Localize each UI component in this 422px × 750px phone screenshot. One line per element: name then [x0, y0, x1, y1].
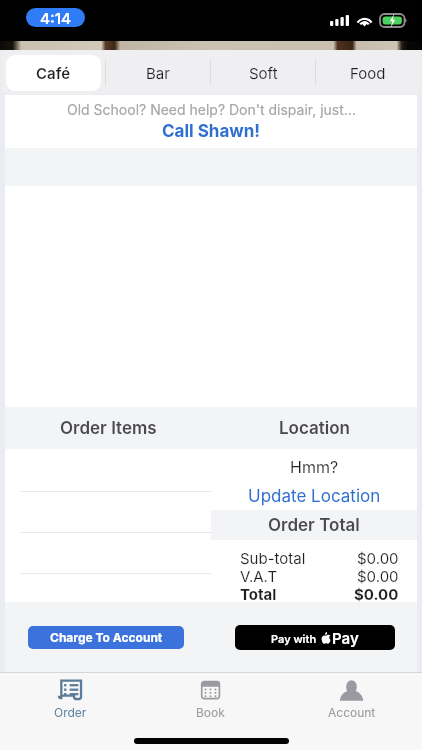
- staticText: Soft: [249, 64, 278, 82]
- staticText: Total: [240, 585, 277, 602]
- staticText: Order Items: [60, 418, 157, 439]
- button[interactable]: Account: [281, 675, 422, 723]
- button[interactable]: Bar: [110, 55, 206, 91]
- staticText: Update Location: [248, 486, 381, 507]
- button[interactable]: Pay with: [235, 625, 395, 650]
- staticText: V.A.T: [240, 567, 278, 585]
- staticText: Pay: [332, 629, 359, 647]
- staticText: Food: [350, 64, 386, 82]
- staticText: Hmm?: [290, 457, 339, 476]
- staticText: Old School? Need help? Don't dispair, ju…: [67, 101, 356, 118]
- staticText: Pay with: [271, 632, 317, 645]
- staticText: Order: [54, 705, 87, 720]
- staticText: Café: [36, 64, 71, 82]
- staticText: 4:14: [40, 9, 72, 27]
- staticText: Sub-total: [240, 549, 306, 567]
- button[interactable]: Food: [320, 55, 416, 91]
- staticText: Bar: [146, 64, 170, 82]
- staticText: $0.00: [357, 549, 399, 567]
- button[interactable]: Book: [140, 675, 281, 723]
- button[interactable]: Update Location: [211, 483, 417, 510]
- staticText: Order Total: [268, 515, 360, 536]
- staticText: Book: [196, 705, 225, 720]
- button[interactable]: Café: [6, 55, 101, 91]
- button[interactable]: Recording 4:14: [26, 8, 85, 27]
- staticText: Call Shawn!: [162, 121, 261, 142]
- button[interactable]: Charge To Account: [28, 626, 184, 649]
- button[interactable]: Order: [0, 675, 140, 723]
- button[interactable]: Call Shawn!: [162, 121, 261, 142]
- staticText: Location: [279, 418, 350, 439]
- button[interactable]: Soft: [215, 55, 311, 91]
- staticText: Charge To Account: [50, 630, 163, 645]
- staticText: Account: [328, 705, 376, 720]
- staticText: $0.00: [354, 585, 399, 602]
- staticText: $0.00: [357, 567, 399, 585]
